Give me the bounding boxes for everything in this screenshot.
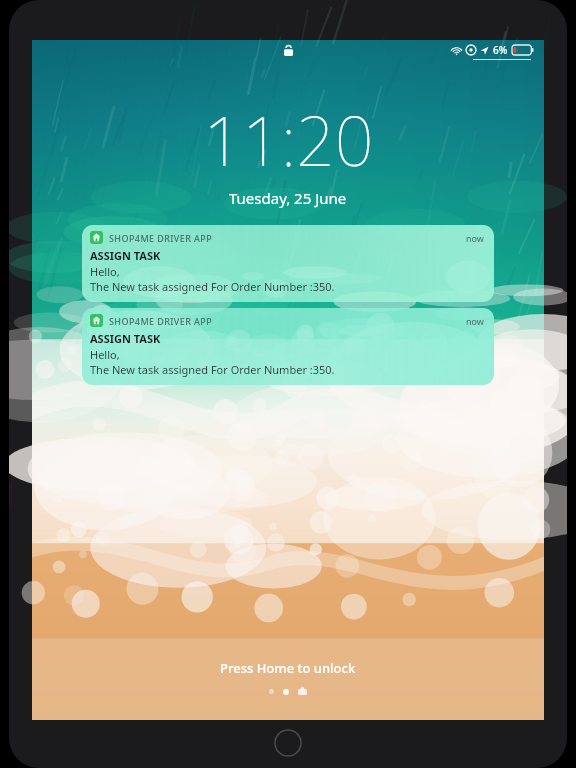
staticText: 6% (493, 43, 508, 57)
button[interactable]: Camera (298, 687, 307, 696)
staticText: Tuesday, 25 June (229, 188, 347, 208)
staticText: ASSIGN TASK (90, 331, 161, 346)
staticText: ASSIGN TASK (90, 248, 161, 263)
staticText: now (466, 315, 484, 327)
staticText: Hello, (90, 264, 120, 279)
staticText: Press Home to unlock (220, 659, 356, 677)
button[interactable]: Home (273, 728, 303, 758)
staticText: SHOP4ME DRIVER APP (109, 315, 213, 327)
staticText: now (466, 232, 484, 244)
staticText: 11:20 (203, 93, 374, 186)
staticText: Hello, (90, 347, 120, 362)
button[interactable]: SHOP4ME DRIVER APP (82, 225, 494, 302)
staticText: The New task assigned For Order Number :… (90, 362, 335, 377)
staticText: The New task assigned For Order Number :… (90, 279, 335, 294)
button[interactable]: SHOP4ME DRIVER APP (82, 308, 494, 385)
staticText: SHOP4ME DRIVER APP (109, 232, 213, 244)
